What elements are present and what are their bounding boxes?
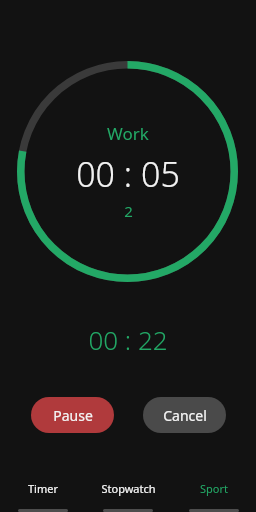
staticText: 2 (124, 201, 133, 221)
button[interactable]: Sport (171, 474, 256, 512)
staticText: Pause (53, 406, 93, 425)
button[interactable]: Pause (31, 397, 114, 433)
staticText: 00 : 05 (76, 151, 180, 197)
staticText: Stopwatch (101, 481, 156, 496)
button[interactable]: Stopwatch (85, 474, 171, 512)
staticText: Sport (200, 481, 228, 496)
button[interactable]: Cancel (143, 397, 226, 433)
staticText: Timer (28, 481, 58, 496)
staticText: 00 : 22 (88, 322, 168, 357)
staticText: Work (107, 122, 149, 145)
staticText: Cancel (163, 406, 207, 425)
button[interactable]: Timer (0, 474, 85, 512)
